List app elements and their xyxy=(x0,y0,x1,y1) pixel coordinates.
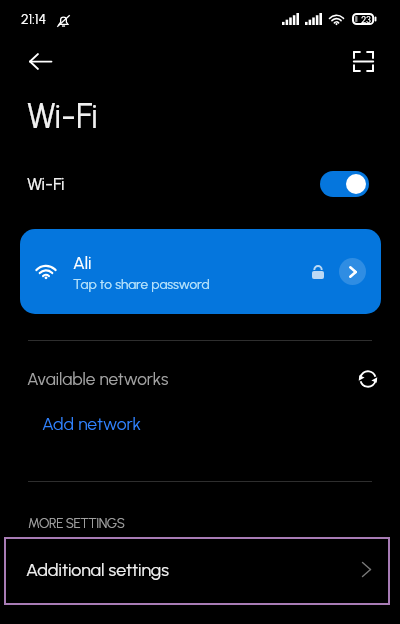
staticText: 21:14 xyxy=(21,11,47,28)
staticText: Wi-Fi xyxy=(27,173,65,195)
staticText: Add network xyxy=(42,413,142,434)
button[interactable]: Ali xyxy=(20,229,381,314)
staticText: Wi-Fi xyxy=(27,96,98,137)
staticText: Available networks xyxy=(27,369,169,390)
staticText: 23 xyxy=(361,14,371,25)
button[interactable]: Additional settings xyxy=(4,537,390,605)
button[interactable]: Network details xyxy=(339,258,366,285)
staticText: Tap to share password xyxy=(73,276,210,292)
button[interactable]: Scan QR code xyxy=(341,43,385,79)
button[interactable]: Add network xyxy=(0,400,400,446)
button[interactable]: Refresh xyxy=(350,361,386,397)
staticText: MORE SETTINGS xyxy=(28,515,125,531)
button[interactable]: Wi-Fi xyxy=(0,156,400,212)
staticText: Additional settings xyxy=(26,559,169,580)
staticText: Ali xyxy=(73,252,92,273)
button[interactable]: Back xyxy=(18,43,62,79)
